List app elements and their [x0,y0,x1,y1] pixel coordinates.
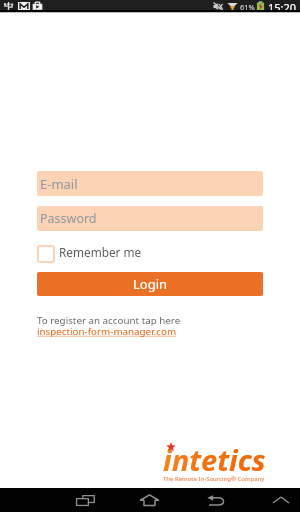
staticText: To register an account tap here [37,314,181,327]
staticText: Login [133,275,168,293]
button[interactable]: Home [129,488,170,512]
button[interactable]: Back [195,488,236,512]
button[interactable]: Login [37,272,263,296]
staticText: The Remote In-Sourcing® Company [163,475,265,483]
button[interactable]: Recent apps [65,488,106,512]
staticText: E-mail [40,175,78,193]
staticText: 15:20 [268,0,297,12]
staticText: Remember me [59,244,142,260]
button[interactable]: Password [37,206,263,231]
staticText: intetics [163,440,266,479]
button[interactable]: Remember me [37,244,142,263]
button[interactable]: inspection-form-manager.com [37,325,177,338]
button[interactable]: E-mail [37,171,263,196]
staticText: 61% [240,2,255,12]
staticText: Password [40,210,97,227]
button[interactable]: Show menu [261,488,300,512]
